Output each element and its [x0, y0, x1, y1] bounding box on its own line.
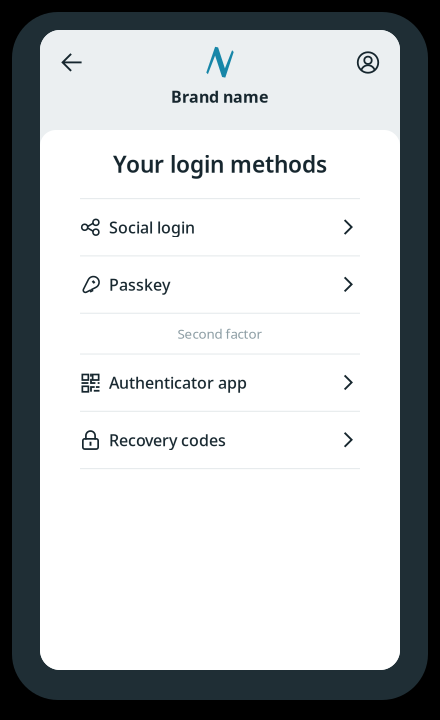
staticText: Recovery codes — [109, 429, 226, 450]
staticText: Brand name — [171, 86, 269, 107]
button[interactable]: Passkey — [40, 256, 400, 313]
button[interactable]: Authenticator app — [40, 354, 400, 411]
staticText: Your login methods — [113, 149, 327, 179]
staticText: Authenticator app — [109, 372, 247, 393]
button[interactable]: Back — [50, 46, 94, 78]
staticText: Social login — [109, 217, 195, 238]
staticText: Second factor — [177, 325, 262, 342]
button[interactable]: Account — [346, 46, 390, 78]
button[interactable]: Recovery codes — [40, 412, 400, 468]
button[interactable]: Social login — [40, 199, 400, 255]
staticText: Passkey — [109, 274, 170, 295]
